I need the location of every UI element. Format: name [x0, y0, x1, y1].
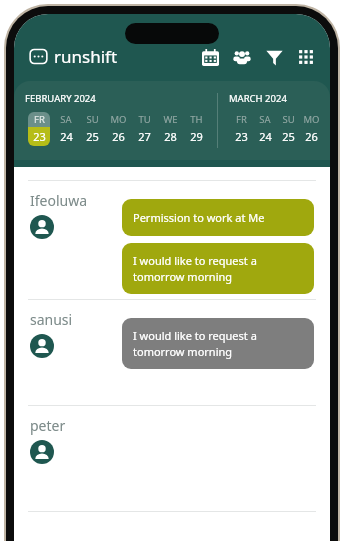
staticText: runshift	[54, 45, 118, 68]
button[interactable]: People	[231, 46, 253, 68]
staticText: 24	[259, 129, 272, 144]
button[interactable]: Ifeoluwa	[14, 181, 330, 299]
staticText: 25	[282, 129, 295, 144]
button[interactable]: WE	[157, 112, 183, 146]
staticText: Ifeoluwa	[30, 191, 88, 210]
staticText: 29	[190, 129, 203, 144]
button[interactable]: Filter	[263, 46, 285, 68]
staticText: FR	[34, 113, 45, 126]
staticText: 23	[33, 129, 46, 144]
staticText: SU	[282, 113, 295, 126]
button[interactable]: MO	[299, 112, 322, 146]
button[interactable]: SU	[79, 112, 105, 146]
button[interactable]: FR	[229, 112, 253, 146]
staticText: TH	[190, 113, 203, 126]
staticText: 24	[60, 129, 73, 144]
staticText: 26	[112, 129, 125, 144]
staticText: 23	[235, 129, 248, 144]
button[interactable]: Apps	[295, 46, 317, 68]
staticText: MO	[303, 113, 320, 126]
staticText: SA	[259, 113, 271, 126]
staticText: FEBRUARY 2024	[25, 92, 96, 105]
button[interactable]: Permission to work at Me	[122, 199, 314, 236]
staticText: sanusi	[30, 310, 73, 329]
button[interactable]: I would like to request a tomorrow morni…	[122, 318, 314, 369]
button[interactable]: I would like to request a tomorrow morni…	[122, 243, 314, 294]
button[interactable]: SU	[276, 112, 299, 146]
button[interactable]: SA	[52, 112, 79, 146]
staticText: TU	[138, 113, 151, 126]
staticText: Permission to work at Me	[133, 210, 265, 225]
staticText: 26	[305, 129, 318, 144]
button[interactable]: TU	[131, 112, 157, 146]
button[interactable]: sanusi	[14, 300, 330, 405]
staticText: 25	[86, 129, 99, 144]
staticText: MARCH 2024	[229, 92, 287, 105]
staticText: SU	[86, 113, 99, 126]
staticText: FR	[236, 113, 247, 126]
button[interactable]: SA	[253, 112, 276, 146]
button[interactable]: runshift	[29, 45, 118, 68]
button[interactable]: peter	[14, 406, 330, 511]
button[interactable]: FR	[25, 112, 52, 146]
button[interactable]: TH	[183, 112, 209, 146]
staticText: 27	[138, 129, 151, 144]
staticText: 28	[164, 129, 177, 144]
staticText: SA	[60, 113, 72, 126]
button[interactable]: Calendar	[199, 46, 221, 68]
button[interactable]: MO	[105, 112, 131, 146]
staticText: WE	[163, 113, 178, 126]
staticText: peter	[30, 416, 66, 435]
staticText: MO	[110, 113, 127, 126]
staticText: I would like to request a tomorrow morni…	[133, 253, 257, 284]
staticText: I would like to request a tomorrow morni…	[133, 328, 257, 359]
button[interactable]: FEBRUARY 2024	[14, 81, 330, 160]
